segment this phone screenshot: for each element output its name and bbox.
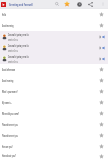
staticText: Good morning	[2, 24, 14, 28]
button[interactable]: Favourite	[95, 141, 108, 152]
button[interactable]: What's your name?	[0, 86, 108, 97]
button[interactable]: Favourite	[95, 130, 108, 141]
staticText: Good evening	[2, 79, 13, 83]
button[interactable]: Good morning	[0, 20, 108, 31]
button[interactable]: Language	[75, 0, 84, 8]
button[interactable]: Good afternoon	[0, 64, 108, 75]
button[interactable]: Pleased to meet you	[0, 119, 108, 130]
staticText: When did you come?	[2, 112, 19, 116]
staticText: Hello	[2, 13, 6, 17]
staticText: cmt n.h u	[8, 49, 18, 53]
button[interactable]: Good evening	[0, 75, 108, 86]
button[interactable]: Hello	[0, 9, 108, 20]
button[interactable]: Favourite	[95, 97, 108, 108]
button[interactable]: Favourite	[95, 9, 108, 20]
button[interactable]: Favourite	[95, 64, 108, 75]
staticText: My name is...	[2, 101, 12, 105]
button[interactable]: Pleased to meet you	[0, 130, 108, 141]
button[interactable]: How are you?	[0, 141, 108, 152]
staticText: Can na bi ya ta ye ne la	[8, 33, 29, 37]
button[interactable]: App icon	[1, 2, 6, 7]
staticText: Pleased to meet you	[2, 134, 18, 138]
button[interactable]: My name is...	[0, 97, 108, 108]
button[interactable]: Favourite	[95, 20, 108, 31]
staticText: What's your name?	[2, 90, 18, 94]
staticText: How are you?	[2, 145, 13, 149]
button[interactable]: Favourite	[95, 86, 108, 97]
button[interactable]: Favourite	[95, 75, 108, 86]
button[interactable]: Favourite	[95, 108, 108, 119]
button[interactable]: Favourite	[95, 119, 108, 130]
button[interactable]: Favourite	[95, 152, 108, 160]
button[interactable]: Search	[52, 0, 61, 8]
button[interactable]: Play audio	[95, 31, 108, 42]
staticText: cmt n.h u	[8, 38, 18, 42]
button[interactable]: Can na bi ya ta ye ne la	[0, 42, 108, 53]
button[interactable]: Play audio	[95, 42, 108, 53]
staticText: Can na bi ya ta ye ne la	[8, 55, 29, 59]
button[interactable]: Favorite	[62, 0, 71, 8]
button[interactable]: Play audio	[95, 53, 108, 64]
staticText: cmt n.h u	[8, 60, 18, 64]
button[interactable]: When did you come?	[0, 108, 108, 119]
staticText: Pleased to meet you	[2, 123, 18, 127]
button[interactable]: How about you?	[0, 152, 108, 160]
button[interactable]: Share	[86, 0, 95, 8]
staticText: How about you?	[2, 154, 16, 158]
button[interactable]: Can na bi ya ta ye ne la	[0, 53, 108, 64]
button[interactable]: Can na bi ya ta ye ne la	[0, 31, 108, 42]
staticText: Greeting and Farewell	[9, 3, 33, 7]
staticText: Can na bi ya ta ye ne la	[8, 44, 29, 48]
staticText: Good afternoon	[2, 68, 15, 72]
